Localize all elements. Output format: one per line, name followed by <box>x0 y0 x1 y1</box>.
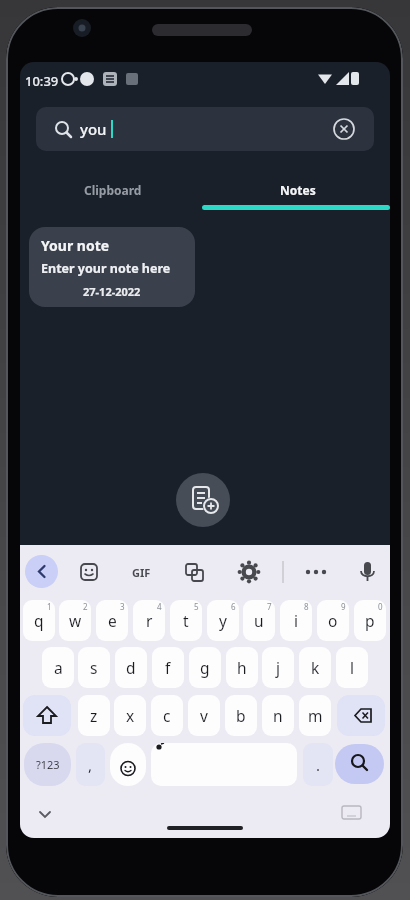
button[interactable]: b <box>225 695 257 736</box>
button[interactable]: Your note <box>29 227 195 307</box>
staticText: i <box>294 610 298 631</box>
staticText: d <box>126 657 136 678</box>
staticText: . <box>316 755 321 775</box>
staticText: n <box>273 705 283 726</box>
staticText: 8 <box>304 601 309 612</box>
button[interactable]: w <box>59 600 91 641</box>
button[interactable] <box>151 743 297 786</box>
staticText: m <box>308 705 323 726</box>
staticText: ?123 <box>36 757 60 772</box>
button[interactable]: ?123 <box>24 743 71 786</box>
button[interactable]: o <box>317 600 349 641</box>
button[interactable] <box>110 743 146 786</box>
button[interactable] <box>20 545 390 838</box>
staticText: y <box>219 610 227 631</box>
button[interactable]: a <box>42 647 74 688</box>
staticText: g <box>200 657 210 678</box>
staticText: , <box>88 755 93 775</box>
staticText: 3 <box>120 601 125 612</box>
button[interactable] <box>335 744 384 784</box>
staticText: Clipboard <box>84 182 142 198</box>
button[interactable] <box>176 473 230 527</box>
staticText: 1 <box>47 601 52 612</box>
staticText: 6 <box>231 601 236 612</box>
staticText: k <box>311 657 320 678</box>
staticText: w <box>69 610 82 631</box>
button[interactable]: y <box>207 600 239 641</box>
staticText: u <box>254 610 264 631</box>
staticText: f <box>165 657 171 678</box>
staticText: 27-12-2022 <box>83 284 141 299</box>
staticText: 0 <box>378 601 383 612</box>
button[interactable] <box>337 695 385 736</box>
staticText: q <box>34 610 44 631</box>
button[interactable]: x <box>114 695 146 736</box>
staticText: b <box>236 705 246 726</box>
button[interactable]: k <box>299 647 331 688</box>
staticText: t <box>183 610 189 631</box>
button[interactable]: i <box>280 600 312 641</box>
staticText: j <box>276 657 280 678</box>
button[interactable]: Clipboard <box>20 167 205 212</box>
staticText: o <box>328 610 338 631</box>
staticText: h <box>237 657 247 678</box>
staticText: 4 <box>157 601 162 612</box>
button[interactable]: l <box>336 647 368 688</box>
staticText: x <box>126 705 135 726</box>
staticText: e <box>108 610 117 631</box>
button[interactable]: h <box>226 647 258 688</box>
button[interactable]: z <box>78 695 110 736</box>
staticText: s <box>90 657 98 678</box>
button[interactable]: GIF <box>132 565 151 580</box>
staticText: r <box>146 610 153 631</box>
staticText: 5 <box>194 601 199 612</box>
staticText: a <box>54 657 63 678</box>
button[interactable]: j <box>262 647 294 688</box>
button[interactable]: you <box>36 107 374 151</box>
button[interactable]: q <box>23 600 55 641</box>
staticText: l <box>350 657 354 678</box>
staticText: 7 <box>267 601 272 612</box>
button[interactable]: , <box>76 743 105 786</box>
button[interactable]: n <box>262 695 294 736</box>
button[interactable]: v <box>188 695 220 736</box>
button[interactable]: d <box>115 647 147 688</box>
staticText: c <box>163 705 171 726</box>
button[interactable]: e <box>96 600 128 641</box>
button[interactable]: t <box>170 600 202 641</box>
button[interactable]: r <box>133 600 165 641</box>
button[interactable]: f <box>152 647 184 688</box>
button[interactable]: Notes <box>205 167 390 212</box>
staticText: Your note <box>41 236 110 255</box>
staticText: Enter your note here <box>41 260 171 277</box>
staticText: 9 <box>341 601 346 612</box>
staticText: 2 <box>83 601 88 612</box>
staticText: Notes <box>280 182 316 198</box>
button[interactable]: p <box>354 600 386 641</box>
button[interactable]: . <box>303 743 333 786</box>
staticText: p <box>365 610 375 631</box>
button[interactable]: m <box>299 695 331 736</box>
button[interactable] <box>23 695 71 736</box>
staticText: 10:39 <box>25 72 59 90</box>
button[interactable]: s <box>78 647 110 688</box>
staticText: z <box>90 705 98 726</box>
button[interactable]: g <box>189 647 221 688</box>
staticText: you <box>80 119 107 139</box>
staticText: v <box>200 705 208 726</box>
button[interactable]: c <box>151 695 183 736</box>
button[interactable]: u <box>243 600 275 641</box>
button[interactable] <box>25 555 58 588</box>
